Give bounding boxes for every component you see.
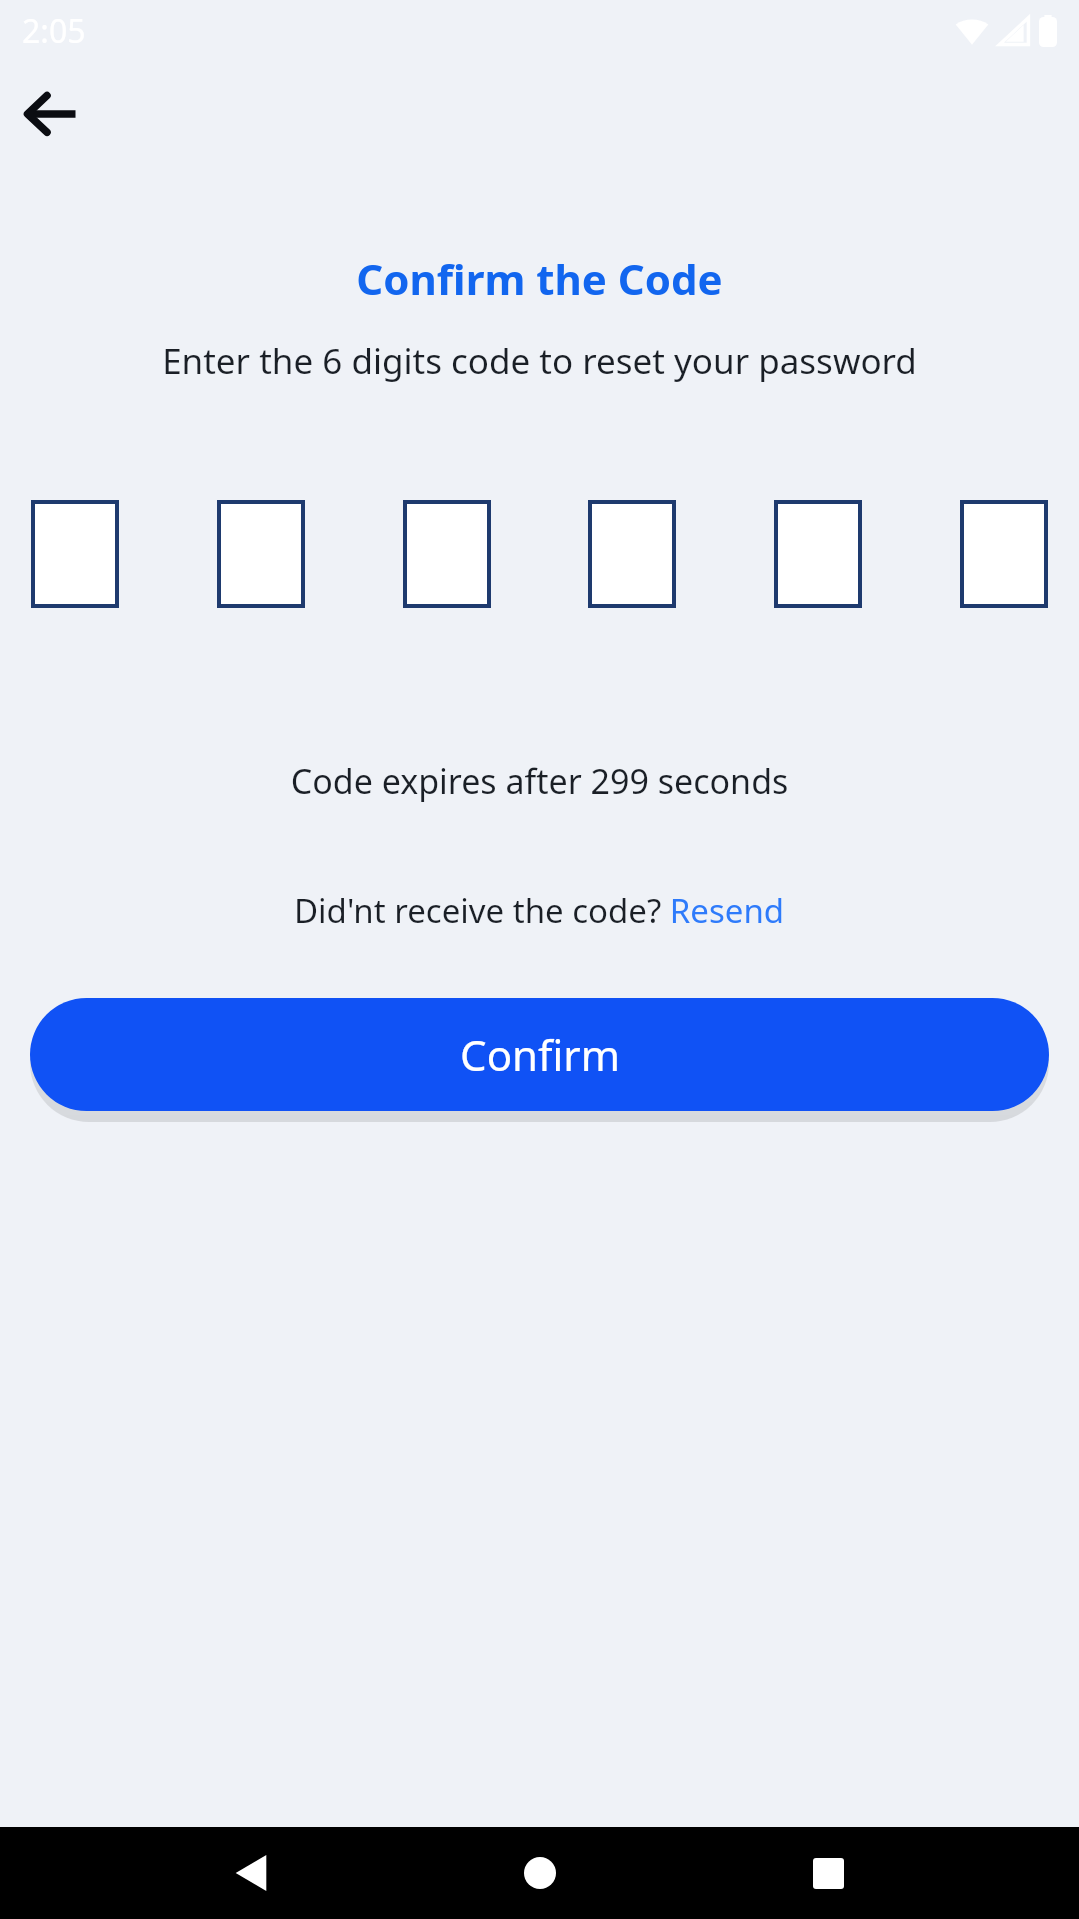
button[interactable]: Code digit field — [31, 500, 119, 608]
button[interactable]: Code digit field — [588, 500, 676, 608]
button[interactable]: Recent apps — [791, 1836, 865, 1910]
button[interactable]: Home — [503, 1836, 577, 1910]
button[interactable]: Confirm — [30, 998, 1049, 1111]
button[interactable]: Back — [214, 1836, 288, 1910]
button[interactable]: Did'nt receive the code? Resend — [294, 888, 785, 933]
button[interactable]: Code digit field — [217, 500, 305, 608]
staticText: Code expires after 299 seconds — [0, 758, 1079, 804]
staticText: Enter the 6 digits code to reset your pa… — [10, 337, 1069, 385]
staticText: Confirm the Code — [0, 250, 1079, 307]
staticText: 2:05 — [22, 9, 86, 53]
button[interactable]: Back — [20, 82, 82, 144]
button[interactable]: Code digit field — [403, 500, 491, 608]
button[interactable]: Code digit field — [960, 500, 1048, 608]
button[interactable]: Code digit field — [774, 500, 862, 608]
staticText: Confirm — [460, 1026, 620, 1083]
staticText: Did'nt receive the code? Resend — [294, 888, 785, 933]
